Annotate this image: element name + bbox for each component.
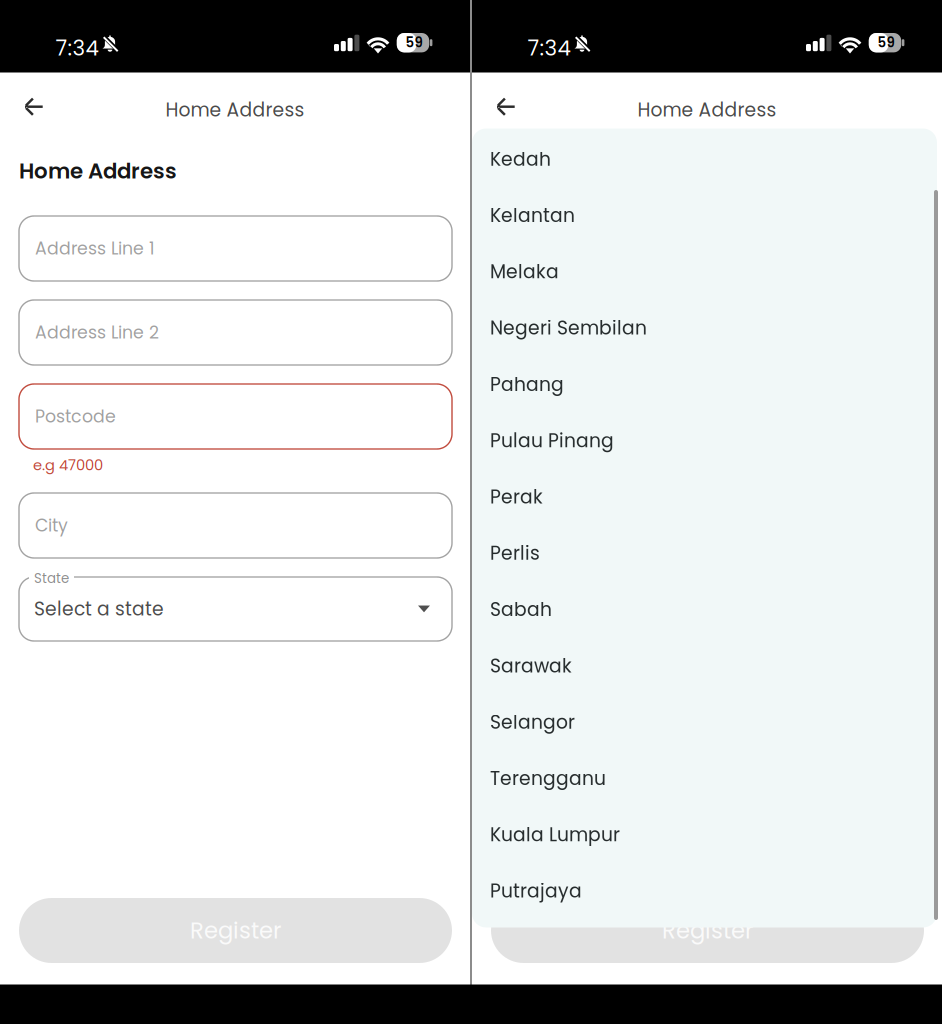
staticText: Register: [662, 915, 753, 946]
staticText: Selangor: [490, 709, 575, 735]
button[interactable]: Melaka: [472, 244, 937, 300]
staticText: Kedah: [490, 146, 551, 172]
button[interactable]: Kuala Lumpur: [472, 807, 937, 863]
button[interactable]: Perlis: [472, 525, 937, 581]
button[interactable]: Pahang: [472, 356, 937, 412]
staticText: Pulau Pinang: [490, 428, 614, 454]
button[interactable]: Back: [472, 72, 535, 136]
staticText: Kuala Lumpur: [490, 822, 620, 848]
button[interactable]: Pulau Pinang: [472, 412, 937, 469]
button[interactable]: Perak: [472, 469, 937, 525]
button[interactable]: Select a state: [19, 577, 452, 641]
button[interactable]: Selangor: [472, 694, 937, 750]
button[interactable]: Register: [491, 898, 924, 963]
staticText: Terengganu: [490, 765, 606, 791]
staticText: Putrajaya: [490, 878, 582, 904]
staticText: 59: [405, 33, 422, 52]
staticText: 7:34: [55, 33, 98, 63]
staticText: Sabah: [490, 596, 552, 623]
staticText: e.g 47000: [33, 455, 103, 475]
staticText: Perak: [490, 484, 543, 510]
staticText: Melaka: [490, 259, 559, 285]
staticText: Home Address: [165, 97, 304, 123]
staticText: 7:34: [527, 33, 570, 63]
button[interactable]: Terengganu: [472, 750, 937, 807]
staticText: Negeri Sembilan: [490, 315, 647, 341]
button[interactable]: Kelantan: [472, 187, 937, 244]
button[interactable]: Sabah: [472, 581, 937, 638]
staticText: Pahang: [490, 371, 564, 397]
button[interactable]: Negeri Sembilan: [472, 300, 937, 356]
button[interactable]: Register: [19, 898, 452, 963]
staticText: Home Address: [19, 156, 177, 186]
staticText: 59: [877, 33, 894, 52]
staticText: Register: [190, 915, 281, 946]
staticText: Home Address: [637, 97, 776, 123]
staticText: Perlis: [490, 540, 540, 566]
button[interactable]: Putrajaya: [472, 863, 937, 919]
button[interactable]: Back: [0, 72, 63, 136]
staticText: Sarawak: [490, 653, 572, 679]
button[interactable]: Sarawak: [472, 638, 937, 694]
staticText: City: [35, 513, 68, 538]
staticText: Select a state: [34, 596, 164, 622]
staticText: Address Line 1: [35, 236, 155, 261]
staticText: Postcode: [35, 404, 116, 429]
button[interactable]: Kedah: [472, 131, 937, 187]
staticText: State: [34, 569, 69, 588]
staticText: Kelantan: [490, 202, 575, 228]
staticText: Address Line 2: [35, 320, 159, 345]
